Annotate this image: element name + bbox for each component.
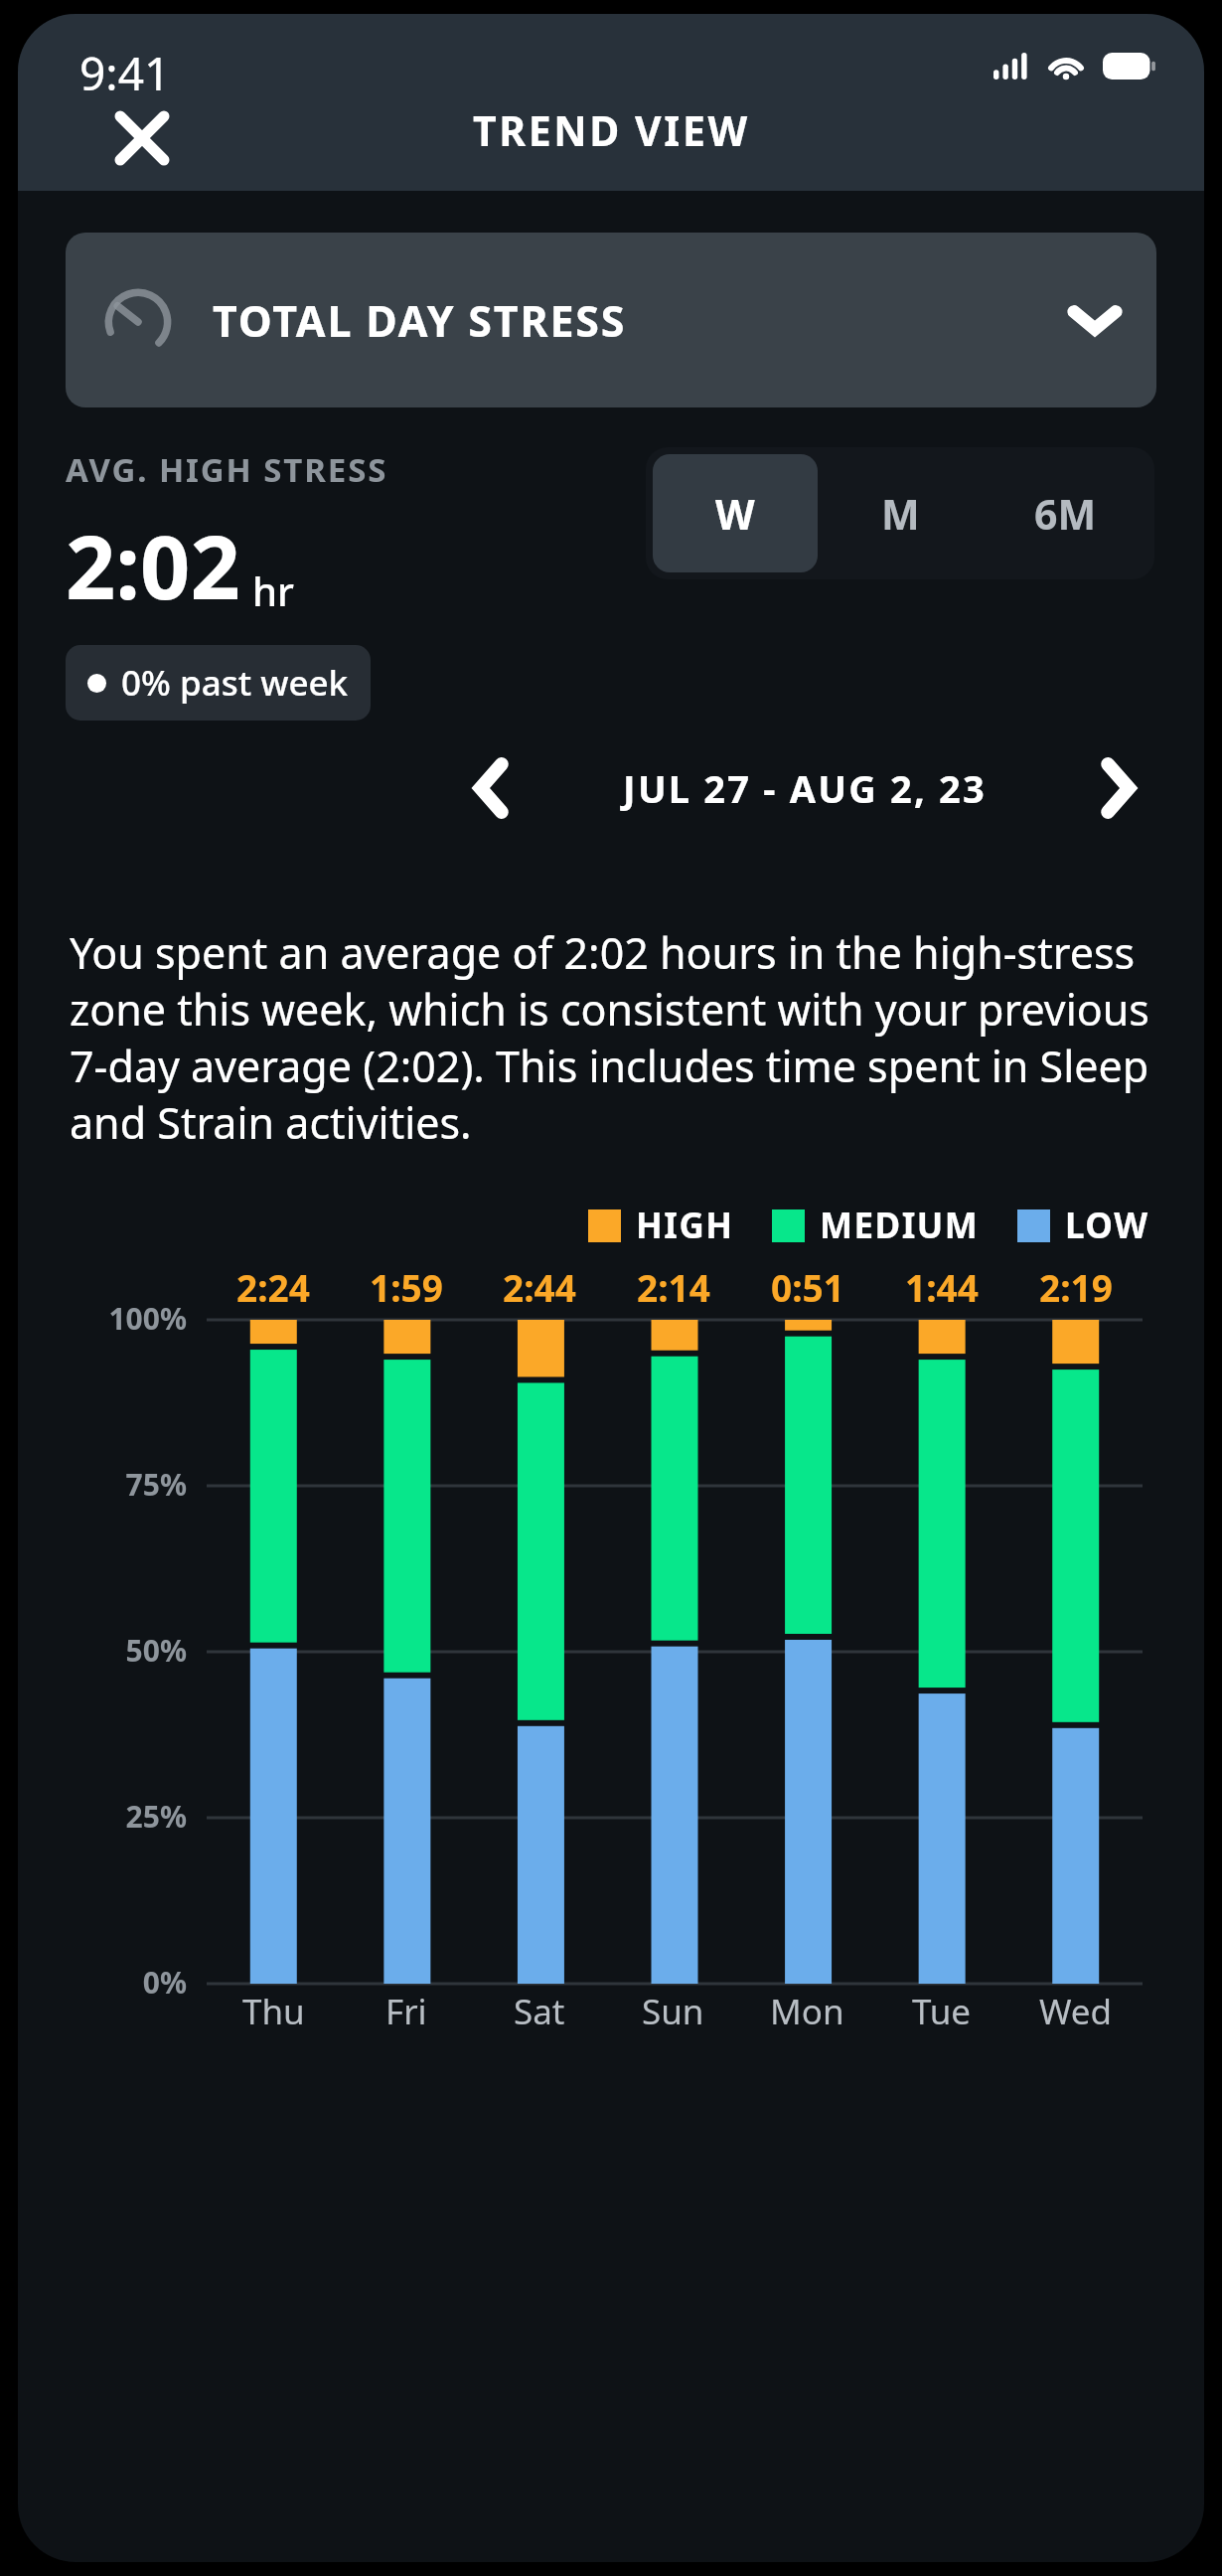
staticText: W — [715, 486, 755, 542]
button[interactable]: HIGH — [585, 1199, 737, 1252]
staticText: 0:51 — [771, 1262, 844, 1312]
staticText: AVG. HIGH STRESS — [66, 447, 388, 492]
button[interactable]: LOW — [1014, 1199, 1152, 1252]
staticText: Wed — [1039, 1988, 1113, 2035]
staticText: 1:44 — [905, 1262, 979, 1312]
staticText: 1:59 — [370, 1262, 443, 1312]
staticText: hr — [252, 563, 294, 617]
staticText: Sun — [642, 1988, 704, 2035]
staticText: 2:24 — [236, 1262, 310, 1312]
staticText: 75% — [18, 1464, 187, 1505]
staticText: LOW — [1065, 1202, 1149, 1249]
button[interactable]: 6M — [983, 454, 1147, 572]
button[interactable]: W — [653, 454, 818, 572]
staticText: TOTAL DAY STRESS — [213, 291, 627, 350]
staticText: 2:14 — [637, 1262, 710, 1312]
button[interactable]: Next week — [1081, 751, 1154, 825]
button[interactable]: TOTAL DAY STRESS — [66, 233, 1156, 407]
staticText: 25% — [18, 1796, 187, 1837]
staticText: 2:44 — [503, 1262, 576, 1312]
staticText: 50% — [18, 1630, 187, 1671]
staticText: 0% past week — [121, 659, 349, 707]
button[interactable]: M — [818, 454, 983, 572]
staticText: 2:02 — [66, 506, 240, 625]
staticText: Fri — [385, 1988, 427, 2035]
staticText: You spent an average of 2:02 hours in th… — [70, 923, 1158, 1151]
button[interactable]: Previous week — [455, 751, 529, 825]
staticText: Tue — [912, 1988, 972, 2035]
staticText: JUL 27 - AUG 2, 23 — [529, 762, 1081, 814]
staticText: 2:19 — [1039, 1262, 1113, 1312]
button[interactable]: MEDIUM — [769, 1199, 983, 1252]
staticText: MEDIUM — [820, 1202, 980, 1249]
staticText: TREND VIEW — [473, 102, 750, 158]
staticText: HIGH — [636, 1202, 734, 1249]
button[interactable]: Close — [103, 99, 181, 177]
staticText: 100% — [18, 1298, 187, 1339]
staticText: Sat — [514, 1988, 565, 2035]
staticText: 0% — [18, 1962, 187, 2003]
staticText: M — [881, 486, 920, 542]
staticText: Thu — [242, 1988, 305, 2035]
staticText: Mon — [770, 1988, 844, 2035]
staticText: 9:41 — [79, 42, 171, 104]
staticText: 6M — [1034, 486, 1097, 542]
button[interactable]: 0% past week — [66, 645, 371, 721]
